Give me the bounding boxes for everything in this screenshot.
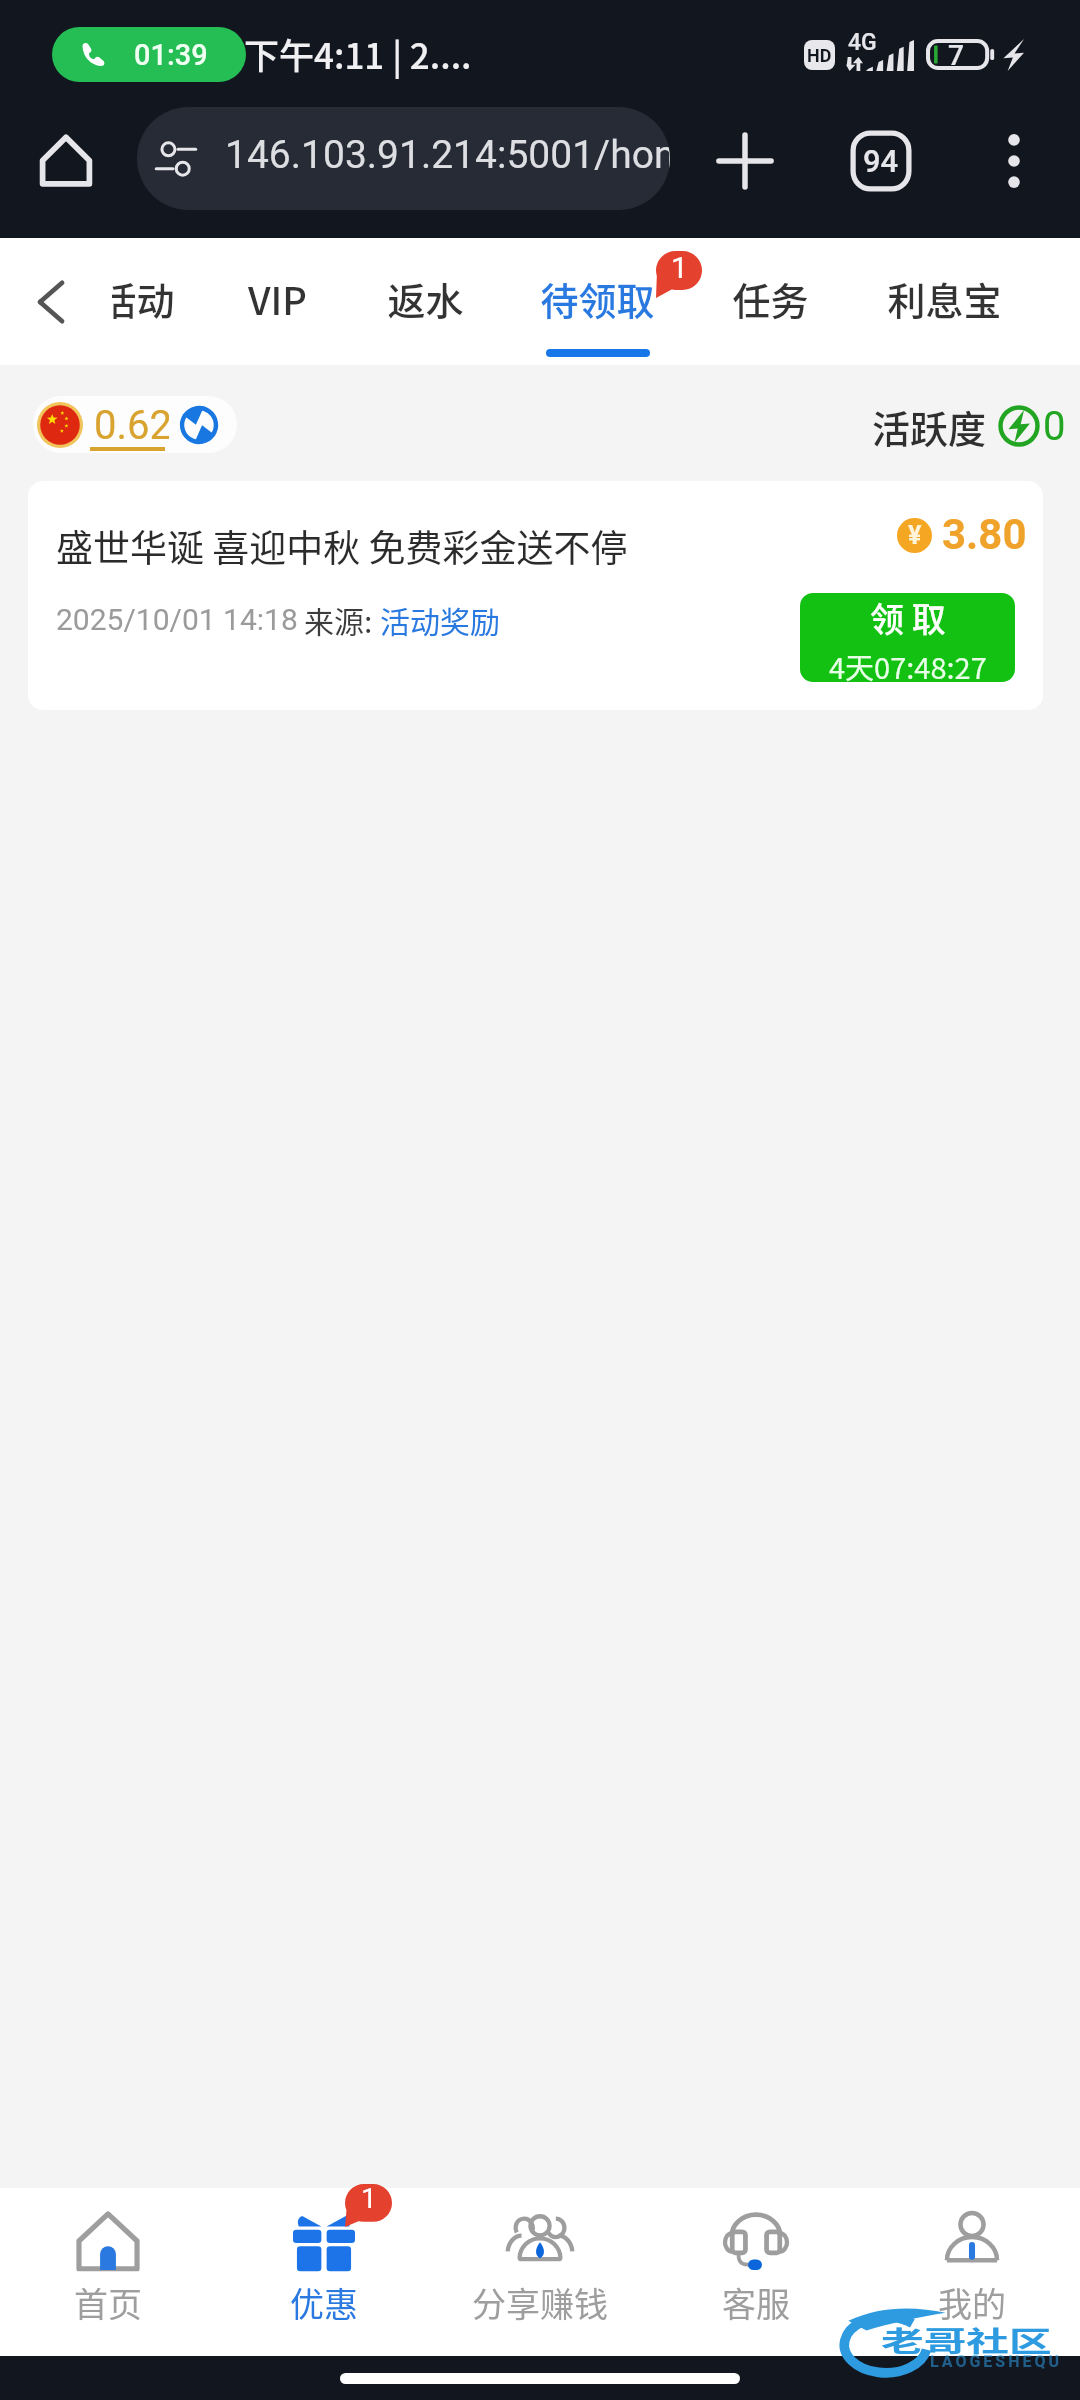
staticText: HD [807,45,832,66]
button[interactable]: 任务 [680,238,860,365]
staticText: 1 [671,250,688,285]
button[interactable]: 分享赚钱 [432,2188,648,2356]
staticText: 领 取 [870,593,946,642]
staticText: 4天07:48:27 [829,645,987,682]
button[interactable]: 利息宝 [854,238,1034,365]
button[interactable]: 146.103.91.214:5001/home [137,107,670,210]
staticText: 活跃度 [872,399,987,454]
staticText: 活动奖励 [380,598,500,641]
button[interactable]: 领 取 [800,593,1015,682]
button[interactable]: 0.62 [33,396,237,453]
button[interactable]: 活动 [46,238,226,365]
button[interactable]: 盛世华诞 喜迎中秋 免费彩金送不停 [28,481,1043,710]
button[interactable]: 返水 [335,238,515,365]
staticText: 活动 [98,271,175,326]
staticText: 0.62 [94,402,169,449]
staticText: 4G [848,29,877,56]
button[interactable]: Home [26,120,106,200]
button[interactable]: 客服 [648,2188,864,2356]
staticText: 0 [1043,403,1066,450]
staticText: LAOGESHEQU [930,2352,1063,2371]
button[interactable]: More options [975,122,1053,200]
staticText: ¥ [908,521,922,550]
button[interactable]: 待领取 [507,238,687,365]
staticText: VIP [248,271,307,326]
staticText: 94 [863,143,899,179]
staticText: 优惠 [290,2278,358,2327]
staticText: 1 [361,2182,377,2215]
staticText: 我的 [938,2278,1006,2327]
staticText: 下午4:11 | 2.... [244,28,472,79]
button[interactable]: Tabs [842,122,920,200]
staticText: 146.103.91.214:5001/home [225,132,670,178]
button[interactable]: New tab [706,122,784,200]
staticText: 3.80 [942,510,1027,559]
staticText: 7 [948,39,964,70]
button[interactable]: 我的 [864,2188,1080,2356]
staticText: 来源: [304,598,380,641]
staticText: 老哥社区 [881,2319,1052,2360]
button[interactable]: Ongoing call [52,27,246,82]
staticText: 01:39 [134,38,208,72]
staticText: 利息宝 [887,271,1002,326]
staticText: 2025/10/01 14:18 [56,602,298,637]
staticText: 任务 [732,271,809,326]
button[interactable]: Back [12,262,92,342]
staticText: 首页 [74,2278,142,2327]
staticText: 分享赚钱 [472,2278,608,2327]
button[interactable]: VIP [187,238,367,365]
staticText: 客服 [722,2278,790,2327]
staticText: 盛世华诞 喜迎中秋 免费彩金送不停 [56,519,628,573]
button[interactable]: 优惠 [216,2188,432,2356]
button[interactable]: 首页 [0,2188,216,2356]
staticText: 待领取 [540,271,655,326]
staticText: 返水 [387,271,464,326]
